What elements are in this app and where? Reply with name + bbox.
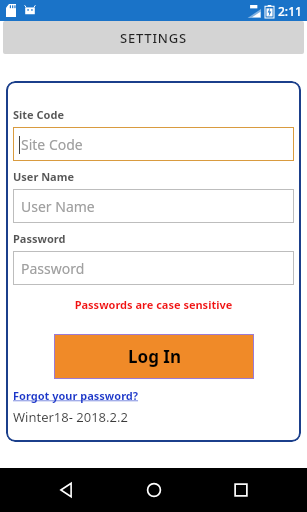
button[interactable]: Forgot your password? [13, 388, 139, 403]
button[interactable]: Back [44, 468, 88, 512]
staticText: Password [13, 231, 66, 246]
staticText: SETTINGS [120, 29, 187, 47]
button[interactable]: Recent apps [219, 468, 263, 512]
button[interactable]: Log In [54, 334, 254, 379]
button[interactable]: Site Code [13, 127, 294, 161]
staticText: Password [21, 259, 85, 278]
button[interactable]: Password [13, 251, 294, 285]
button[interactable]: SETTINGS [3, 21, 304, 54]
staticText: Site Code [13, 107, 65, 122]
button[interactable]: User Name [13, 189, 294, 223]
button[interactable]: Home [132, 468, 176, 512]
staticText: Winter18- 2018.2.2 [13, 408, 128, 426]
staticText: User Name [21, 197, 95, 216]
staticText: User Name [13, 169, 75, 184]
staticText: Site Code [21, 135, 83, 154]
staticText: 2:11 [278, 3, 302, 19]
staticText: Forgot your password? [13, 388, 139, 403]
staticText: Passwords are case sensitive [13, 297, 294, 312]
staticText: Log In [128, 345, 181, 368]
